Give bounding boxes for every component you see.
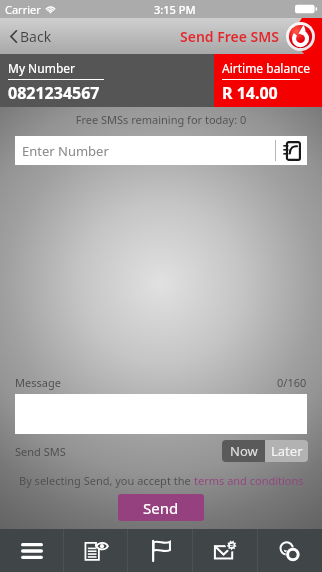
- staticText: By selecting Send, you accept the: [19, 473, 194, 488]
- staticText: Carrier: [5, 2, 41, 17]
- button[interactable]: Back: [10, 18, 52, 54]
- button[interactable]: Later: [265, 440, 308, 462]
- staticText: Send SMS: [15, 444, 66, 459]
- staticText: 0/160: [277, 375, 307, 390]
- button[interactable]: My Number: [0, 54, 214, 107]
- staticText: Message: [15, 375, 61, 390]
- staticText: Enter Number: [22, 142, 109, 160]
- button[interactable]: Menu: [0, 529, 63, 572]
- button[interactable]: Send: [118, 494, 204, 521]
- staticText: Back: [20, 27, 52, 46]
- button[interactable]: Airtime balance: [214, 54, 322, 107]
- staticText: R 14.00: [222, 82, 278, 104]
- button[interactable]: Flag: [128, 529, 192, 572]
- staticText: My Number: [8, 60, 75, 76]
- staticText: Send Free SMS: [180, 27, 279, 46]
- button[interactable]: Statements: [64, 529, 127, 572]
- button[interactable]: Choose from contacts: [276, 136, 307, 165]
- staticText: Later: [271, 442, 303, 460]
- staticText: Airtime balance: [222, 60, 311, 76]
- button[interactable]: Messages: [193, 529, 257, 572]
- button[interactable]: terms and conditions: [194, 473, 304, 488]
- staticText: 3:15 PM: [154, 2, 196, 17]
- staticText: Send: [143, 498, 179, 518]
- button[interactable]: More: [258, 529, 322, 572]
- staticText: Free SMSs remaining for today: 0: [0, 112, 322, 127]
- staticText: 0821234567: [8, 82, 100, 104]
- button[interactable]: Now: [222, 440, 265, 462]
- button[interactable]: Enter Number: [15, 136, 307, 165]
- staticText: Now: [230, 442, 258, 460]
